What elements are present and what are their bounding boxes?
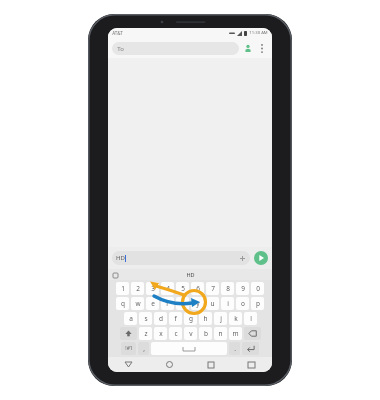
button[interactable]: c <box>169 327 182 340</box>
staticText: w <box>135 299 141 308</box>
button[interactable]: Shift <box>120 327 137 340</box>
staticText: q <box>121 299 125 308</box>
staticText: u <box>210 299 215 308</box>
staticText: 0 <box>256 284 260 293</box>
staticText: v <box>189 329 193 338</box>
staticText: j <box>220 314 222 323</box>
staticText: z <box>144 329 148 338</box>
staticText: l <box>250 314 252 323</box>
button[interactable]: q <box>116 297 129 310</box>
staticText: HD <box>186 271 195 278</box>
button[interactable]: r <box>161 297 174 310</box>
staticText: 7 <box>211 284 215 293</box>
staticText: g <box>189 314 193 323</box>
staticText: 5 <box>181 284 185 293</box>
staticText: s <box>144 314 148 323</box>
button[interactable]: m <box>229 327 242 340</box>
button[interactable]: x <box>154 327 167 340</box>
button[interactable]: f <box>169 312 182 325</box>
button[interactable]: 8 <box>221 282 234 295</box>
button[interactable]: e <box>146 297 159 310</box>
staticText: i <box>227 299 229 308</box>
staticText: 9 <box>241 284 245 293</box>
button[interactable]: Backspace <box>244 327 261 340</box>
button[interactable]: To <box>117 42 239 55</box>
staticText: t <box>181 299 184 308</box>
button[interactable]: j <box>214 312 227 325</box>
button[interactable]: b <box>199 327 212 340</box>
button[interactable]: 6 <box>191 282 204 295</box>
button[interactable]: Home <box>149 357 190 372</box>
button[interactable]: s <box>139 312 152 325</box>
button[interactable]: y <box>191 297 204 310</box>
staticText: 11:30 AM <box>249 30 268 36</box>
staticText: To <box>117 45 124 53</box>
staticText: , <box>143 344 145 353</box>
button[interactable]: Keyboard <box>231 357 272 372</box>
staticText: e <box>151 299 155 308</box>
staticText: 2 <box>136 284 140 293</box>
button[interactable]: u <box>206 297 219 310</box>
button[interactable]: 3 <box>146 282 159 295</box>
staticText: !#1 <box>125 345 133 352</box>
staticText: 6 <box>196 284 200 293</box>
staticText: 3 <box>151 284 155 293</box>
staticText: y <box>196 299 200 308</box>
button[interactable]: Keyboard settings <box>111 271 119 279</box>
button[interactable]: Enter <box>242 342 259 355</box>
button[interactable]: 7 <box>206 282 219 295</box>
button[interactable]: k <box>229 312 242 325</box>
staticText: 8 <box>226 284 230 293</box>
button[interactable]: 5 <box>176 282 189 295</box>
staticText: k <box>234 314 238 323</box>
button[interactable]: Recents <box>190 357 231 372</box>
button[interactable]: . <box>229 342 240 355</box>
button[interactable]: More options <box>256 42 268 54</box>
staticText: r <box>166 299 169 308</box>
button[interactable]: p <box>251 297 264 310</box>
staticText: h <box>203 314 208 323</box>
button[interactable]: n <box>214 327 227 340</box>
button[interactable]: t <box>176 297 189 310</box>
staticText: a <box>129 314 133 323</box>
staticText: b <box>204 329 208 338</box>
button[interactable]: l <box>244 312 257 325</box>
button[interactable]: w <box>131 297 144 310</box>
button[interactable]: i <box>221 297 234 310</box>
button[interactable]: Space <box>151 342 227 355</box>
staticText: f <box>174 314 177 323</box>
staticText: 1 <box>121 284 125 293</box>
staticText: m <box>232 329 239 338</box>
button[interactable]: 4 <box>161 282 174 295</box>
button[interactable]: 2 <box>131 282 144 295</box>
button[interactable]: 9 <box>236 282 249 295</box>
staticText: 4 <box>166 284 170 293</box>
staticText: AT&T <box>112 30 123 36</box>
staticText: d <box>159 314 163 323</box>
button[interactable]: , <box>138 342 149 355</box>
staticText: n <box>218 329 223 338</box>
button[interactable]: Send <box>254 251 268 265</box>
button[interactable]: 1 <box>116 282 129 295</box>
staticText: p <box>256 299 260 308</box>
button[interactable]: Add contact <box>242 42 254 54</box>
staticText: c <box>174 329 178 338</box>
staticText: . <box>234 344 236 353</box>
button[interactable]: g <box>184 312 197 325</box>
button[interactable]: o <box>236 297 249 310</box>
button[interactable]: Hide keyboard <box>108 357 149 372</box>
button[interactable]: h <box>199 312 212 325</box>
button[interactable]: v <box>184 327 197 340</box>
button[interactable]: z <box>139 327 152 340</box>
button[interactable]: !#1 <box>121 342 136 355</box>
button[interactable]: HD <box>112 251 250 265</box>
button[interactable]: 0 <box>251 282 264 295</box>
button[interactable]: a <box>124 312 137 325</box>
staticText: x <box>159 329 163 338</box>
staticText: o <box>241 299 245 308</box>
staticText: HD <box>116 254 125 262</box>
button[interactable]: d <box>154 312 167 325</box>
